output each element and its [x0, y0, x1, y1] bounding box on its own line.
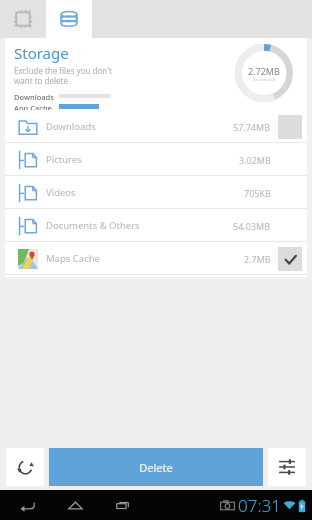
button[interactable]: Home [58, 490, 92, 520]
button[interactable]: Toggle Maps Cache [278, 247, 302, 271]
button[interactable]: Settings [268, 448, 306, 486]
staticText: Exclude the files you don't want to dele… [14, 65, 112, 86]
staticText: Recoverable [253, 77, 276, 82]
staticText: Maps Cache [46, 252, 100, 265]
button[interactable]: Device [0, 0, 46, 38]
staticText: Downloads [46, 120, 96, 133]
staticText: 54.03MB [233, 220, 271, 232]
staticText: Storage [14, 43, 69, 63]
staticText: 2.7MB [244, 253, 271, 265]
staticText: Videos [46, 186, 76, 199]
staticText: 2.72MB [248, 65, 280, 77]
button[interactable]: Maps Cache [5, 242, 307, 275]
staticText: App Cache [14, 103, 57, 110]
button[interactable]: Downloads [5, 110, 307, 143]
staticText: Pictures [46, 153, 82, 166]
staticText: Delete [139, 460, 173, 475]
button[interactable]: Recent apps [106, 490, 140, 520]
button[interactable]: Refresh [6, 448, 44, 486]
staticText: 705KB [244, 187, 271, 199]
button[interactable]: Delete [49, 448, 263, 486]
button[interactable]: Documents & Others [5, 209, 307, 242]
button[interactable]: Pictures [5, 143, 307, 176]
button[interactable]: Back [10, 490, 44, 520]
staticText: 3.02MB [239, 154, 271, 166]
staticText: 57.74MB [233, 121, 271, 133]
staticText: 07:31 [238, 494, 281, 517]
staticText: Downloads [14, 92, 57, 102]
button[interactable]: Storage [46, 0, 92, 38]
button[interactable]: Videos [5, 176, 307, 209]
staticText: Documents & Others [46, 219, 140, 232]
